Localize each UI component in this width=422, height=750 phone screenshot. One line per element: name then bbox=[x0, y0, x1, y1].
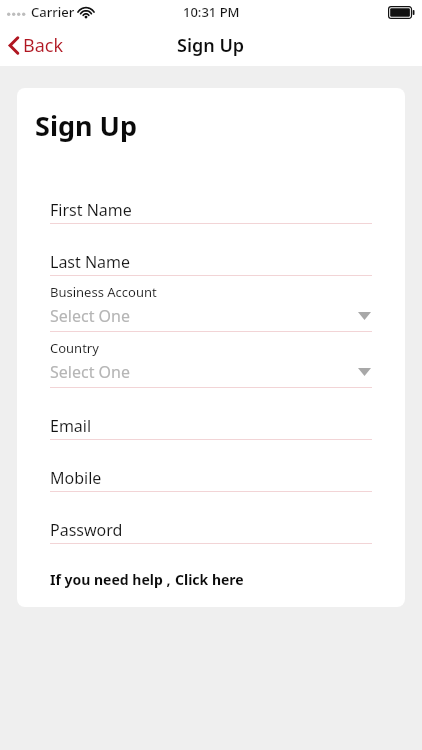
staticText: Select One bbox=[50, 305, 130, 327]
staticText: Password bbox=[50, 519, 123, 541]
staticText: Country bbox=[50, 339, 99, 357]
button[interactable]: Password bbox=[17, 518, 405, 544]
button[interactable]: First Name bbox=[17, 198, 405, 224]
staticText: Back bbox=[23, 33, 64, 58]
staticText: Carrier bbox=[31, 3, 75, 21]
staticText: Business Account bbox=[50, 283, 157, 301]
staticText: First Name bbox=[50, 199, 132, 221]
button[interactable]: Email bbox=[17, 414, 405, 440]
button[interactable]: Business Account bbox=[17, 282, 405, 332]
button[interactable]: Country bbox=[17, 338, 405, 388]
other: Open Business Account options bbox=[358, 312, 371, 320]
button[interactable]: Mobile bbox=[17, 466, 405, 492]
staticText: Select One bbox=[50, 361, 130, 383]
staticText: Sign Up bbox=[35, 107, 138, 144]
staticText: 10:31 PM bbox=[183, 3, 240, 21]
staticText: If you need help , bbox=[50, 570, 171, 589]
staticText: Email bbox=[50, 415, 92, 437]
staticText: Last Name bbox=[50, 251, 131, 273]
staticText: Sign Up bbox=[177, 33, 245, 58]
button[interactable]: Click here bbox=[175, 570, 244, 589]
button[interactable]: Last Name bbox=[17, 250, 405, 276]
staticText: Mobile bbox=[50, 467, 102, 489]
button[interactable]: Back bbox=[0, 29, 74, 62]
staticText: Click here bbox=[175, 570, 244, 589]
other: Open Country options bbox=[358, 368, 371, 376]
